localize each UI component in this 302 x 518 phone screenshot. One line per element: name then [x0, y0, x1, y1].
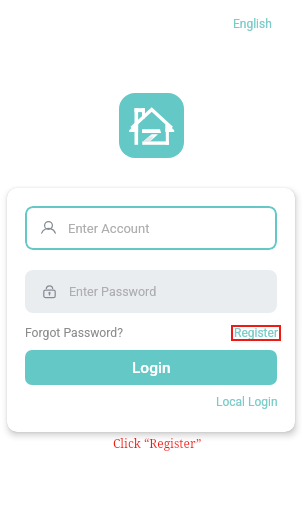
other: App logo [119, 93, 184, 158]
staticText: Local Login [216, 395, 278, 409]
staticText: English [233, 17, 272, 31]
button[interactable]: Local Login [216, 392, 278, 412]
button[interactable]: English [227, 12, 278, 36]
button[interactable]: Forgot Password? [25, 323, 123, 343]
staticText: Forgot Password? [25, 326, 123, 340]
staticText: Enter Account [68, 221, 150, 236]
button[interactable]: Enter Account [25, 206, 277, 250]
staticText: Enter Password [69, 284, 157, 299]
staticText: Click “Register” [113, 435, 202, 451]
button[interactable]: Login [25, 350, 277, 385]
staticText: Login [132, 359, 171, 377]
button[interactable]: Enter Password [25, 270, 277, 313]
staticText: Register [234, 326, 278, 340]
button[interactable]: Register [231, 325, 281, 341]
